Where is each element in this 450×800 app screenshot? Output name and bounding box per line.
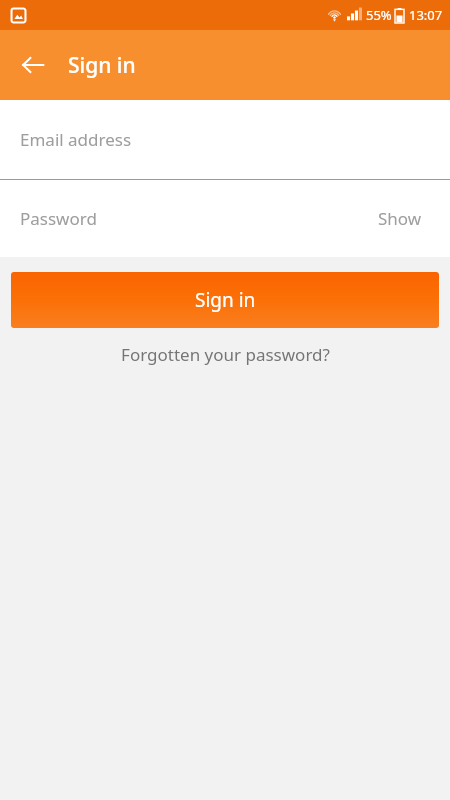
staticText: Password: [20, 207, 97, 230]
staticText: 13:07: [409, 6, 443, 24]
button[interactable]: Password: [0, 180, 450, 257]
staticText: Sign in: [195, 287, 256, 313]
staticText: Email address: [20, 128, 132, 151]
staticText: 55%: [366, 6, 392, 24]
button[interactable]: Show: [350, 180, 450, 257]
staticText: Sign in: [68, 51, 136, 80]
staticText: Forgotten your password?: [121, 343, 330, 366]
button[interactable]: Forgotten your password?: [0, 328, 450, 380]
button[interactable]: Back: [11, 43, 55, 87]
button[interactable]: Sign in: [11, 272, 439, 328]
button[interactable]: Email address: [0, 100, 450, 179]
staticText: Show: [378, 207, 422, 230]
